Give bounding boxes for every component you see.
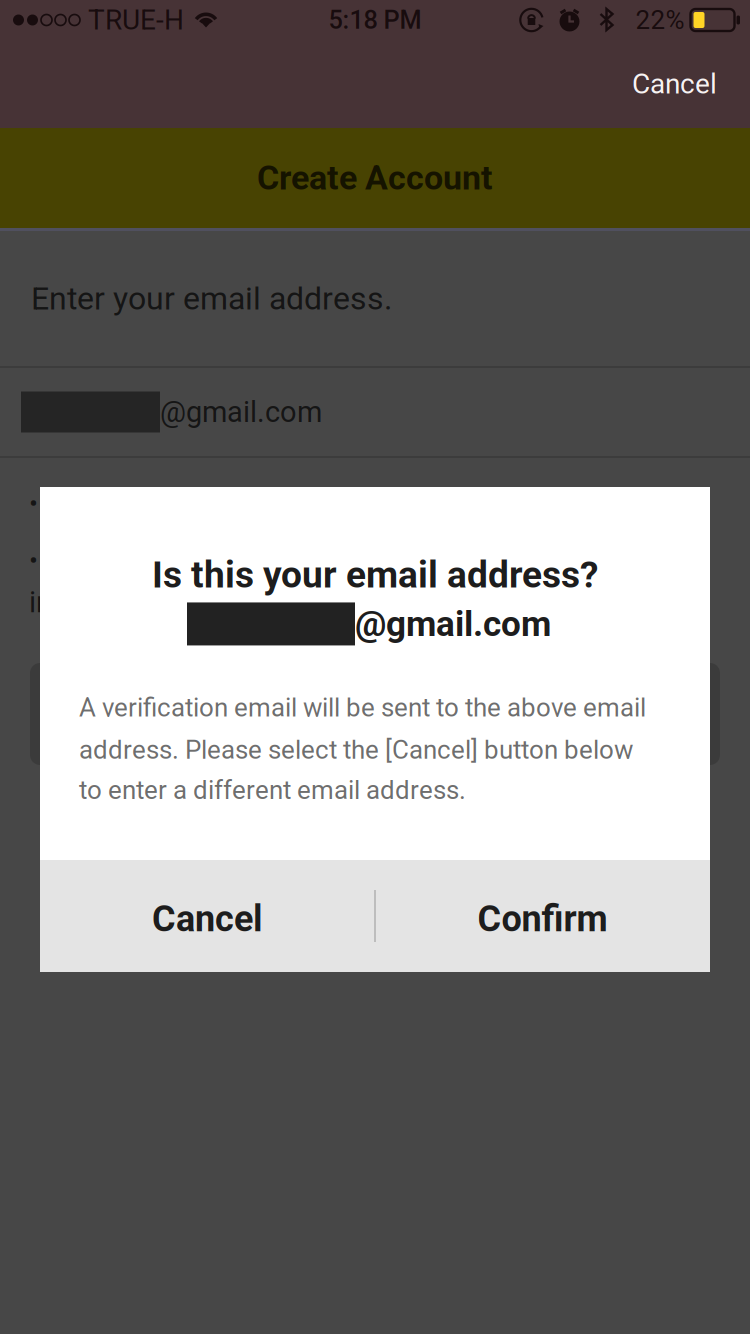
staticText: Cancel: [632, 68, 717, 100]
button[interactable]: Cancel: [616, 54, 733, 114]
staticText: Cancel: [152, 898, 263, 940]
staticText: 22%: [635, 5, 684, 35]
staticText: @gmail.com: [355, 603, 551, 644]
staticText: Confirm: [477, 898, 607, 940]
button[interactable]: Confirm: [375, 860, 710, 972]
staticText: address. Please select the [Cancel] butt…: [79, 735, 633, 765]
button[interactable]: Cancel: [40, 860, 375, 972]
staticText: Enter your email address.: [31, 280, 392, 317]
staticText: A verification email will be sent to the…: [79, 692, 646, 723]
staticText: 5:18 PM: [328, 5, 421, 35]
staticText: Create Account: [257, 158, 493, 198]
staticText: •: [29, 488, 38, 519]
staticText: in: [29, 585, 52, 619]
staticText: TRUE-H: [88, 4, 184, 36]
staticText: to enter a different email address.: [79, 775, 466, 805]
staticText: Is this your email address?: [152, 553, 598, 596]
staticText: •: [29, 545, 38, 576]
staticText: @gmail.com: [160, 395, 322, 429]
